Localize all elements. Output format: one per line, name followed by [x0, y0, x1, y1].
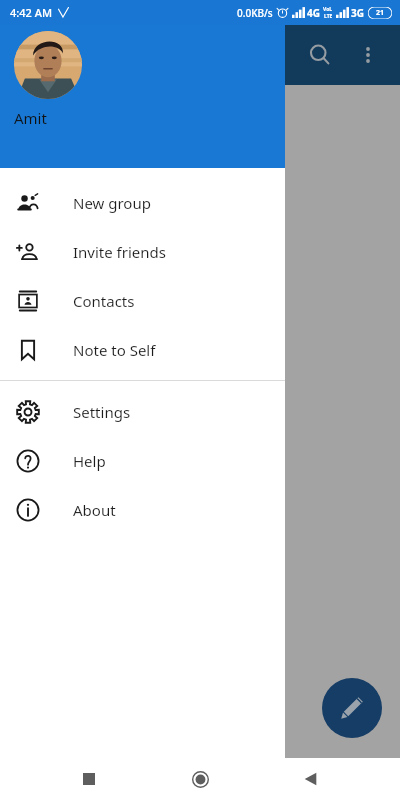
staticText: 4:42 AM: [10, 5, 53, 20]
button[interactable]: Settings: [0, 387, 285, 436]
staticText: Note to Self: [73, 340, 156, 360]
button[interactable]: Compose new message: [322, 678, 382, 738]
staticText: Invite friends: [73, 242, 166, 262]
button[interactable]: About: [0, 485, 285, 534]
staticText: 21: [376, 8, 385, 18]
staticText: About: [73, 500, 116, 520]
button[interactable]: Profile photo: [14, 31, 82, 99]
staticText: 0.0KB/s: [237, 6, 273, 20]
button[interactable]: Contacts: [0, 276, 285, 325]
button[interactable]: Home: [178, 758, 222, 800]
button[interactable]: New group: [0, 178, 285, 227]
staticText: Contacts: [73, 291, 135, 311]
button[interactable]: Recents: [67, 758, 111, 800]
button[interactable]: Note to Self: [0, 325, 285, 374]
button[interactable]: [0, 85, 400, 758]
staticText: Amit: [14, 108, 47, 128]
button[interactable]: Back: [289, 758, 333, 800]
staticText: Help: [73, 451, 106, 471]
button[interactable]: Invite friends: [0, 227, 285, 276]
button[interactable]: Search: [296, 31, 344, 79]
staticText: New group: [73, 193, 151, 213]
button[interactable]: Help: [0, 436, 285, 485]
staticText: LTE: [324, 13, 333, 20]
staticText: Settings: [73, 402, 131, 422]
staticText: Welcome to Signal something to get start…: [30, 310, 195, 426]
staticText: 3G: [351, 6, 364, 20]
button[interactable]: More options: [344, 31, 392, 79]
button[interactable]: Profile photo: [0, 0, 285, 168]
staticText: VoL: [323, 6, 333, 13]
staticText: 4G: [307, 6, 320, 20]
